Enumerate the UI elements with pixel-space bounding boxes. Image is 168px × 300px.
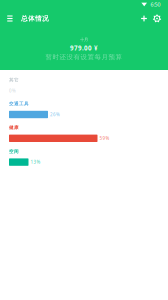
staticText: 空闲 bbox=[9, 148, 19, 154]
staticText: 暂时还没有设置每月预算 bbox=[45, 53, 122, 61]
button[interactable]: Menu bbox=[4, 12, 15, 24]
staticText: 26% bbox=[50, 111, 60, 117]
staticText: 十月 bbox=[80, 37, 88, 42]
staticText: 其它 bbox=[9, 77, 19, 83]
staticText: 6:50 bbox=[150, 1, 160, 8]
staticText: 交通工具 bbox=[9, 101, 29, 107]
staticText: 13% bbox=[30, 159, 40, 165]
button[interactable]: Settings bbox=[151, 12, 162, 24]
staticText: 总体情况 bbox=[21, 14, 49, 23]
staticText: 979.00 ¥ bbox=[70, 44, 98, 52]
button[interactable]: Add bbox=[138, 12, 149, 24]
staticText: 健康 bbox=[9, 125, 19, 130]
staticText: 59% bbox=[99, 135, 109, 141]
staticText: 0% bbox=[9, 88, 16, 94]
